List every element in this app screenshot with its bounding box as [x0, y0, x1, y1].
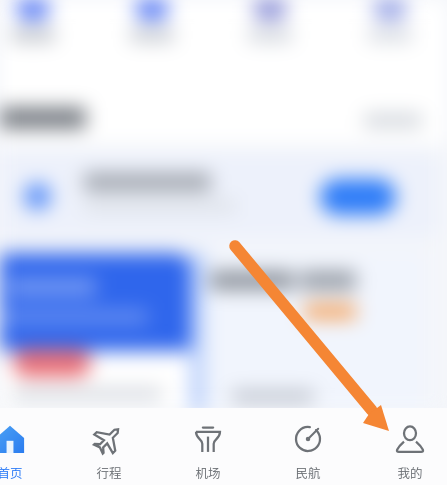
- button[interactable]: [0, 152, 439, 238]
- button[interactable]: 民航: [263, 408, 353, 485]
- button[interactable]: 行程: [64, 408, 154, 485]
- staticText: 行程: [96, 463, 122, 481]
- staticText: 机场: [195, 463, 221, 481]
- button[interactable]: 我的: [365, 408, 447, 485]
- button[interactable]: [240, 0, 300, 66]
- button[interactable]: 机场: [163, 408, 253, 485]
- staticText: 我的: [397, 463, 423, 481]
- staticText: 首页: [0, 463, 23, 481]
- staticText: 民航: [295, 463, 321, 481]
- button[interactable]: 首页: [0, 408, 55, 485]
- button[interactable]: [360, 0, 420, 66]
- button[interactable]: [122, 0, 182, 66]
- other: Annotation arrow: [0, 0, 447, 485]
- button[interactable]: [3, 0, 63, 66]
